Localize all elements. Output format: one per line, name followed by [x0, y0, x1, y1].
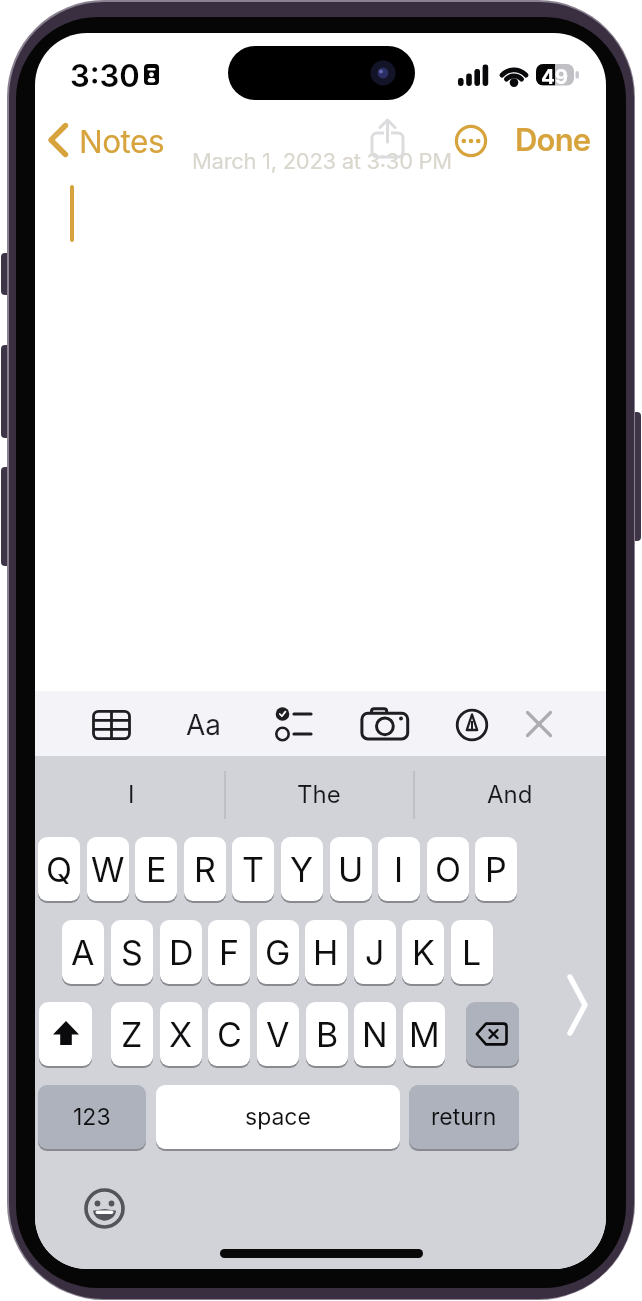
staticText: Y	[290, 849, 314, 890]
staticText: N	[362, 1014, 388, 1055]
button[interactable]: R	[184, 837, 226, 901]
staticText: C	[217, 1014, 242, 1055]
button[interactable]: T	[232, 837, 274, 901]
button[interactable]: O	[427, 837, 469, 901]
staticText: March 1, 2023 at 3:30 PM	[192, 148, 452, 175]
staticText: V	[266, 1014, 290, 1055]
button[interactable]	[565, 970, 595, 1040]
button[interactable]: H	[305, 920, 347, 984]
button[interactable]: E	[135, 837, 177, 901]
staticText: I	[394, 849, 404, 890]
button[interactable]: D	[160, 920, 202, 984]
button[interactable]: N	[354, 1002, 396, 1066]
button[interactable]: And	[413, 756, 606, 833]
staticText: F	[219, 932, 240, 973]
button[interactable]: Notes	[43, 119, 193, 163]
button[interactable]: Done	[505, 119, 601, 161]
staticText: R	[194, 849, 216, 890]
staticText: And	[487, 780, 533, 809]
button[interactable]	[82, 1186, 127, 1231]
button[interactable]	[454, 124, 488, 158]
button[interactable]	[455, 708, 489, 742]
button[interactable]	[39, 1002, 92, 1066]
button[interactable]: K	[402, 920, 444, 984]
button[interactable]: B	[306, 1002, 348, 1066]
button[interactable]: I	[38, 756, 224, 833]
staticText: 123	[73, 1103, 111, 1131]
button[interactable]: space	[156, 1085, 400, 1149]
staticText: Done	[515, 121, 591, 159]
staticText: H	[313, 932, 339, 973]
staticText: T	[242, 849, 264, 890]
staticText: 49	[541, 64, 569, 86]
staticText: D	[169, 932, 194, 973]
button[interactable]: V	[257, 1002, 299, 1066]
staticText: L	[462, 932, 482, 973]
staticText: E	[146, 849, 167, 890]
button[interactable]: L	[451, 920, 493, 984]
staticText: Z	[121, 1014, 143, 1055]
staticText: Notes	[79, 122, 165, 160]
staticText: Q	[46, 849, 72, 890]
button[interactable]	[466, 1002, 519, 1066]
button[interactable]: C	[208, 1002, 250, 1066]
button[interactable]: return	[409, 1085, 519, 1149]
button[interactable]	[89, 703, 134, 747]
staticText: S	[121, 932, 143, 973]
staticText: The	[297, 780, 341, 809]
staticText: J	[365, 932, 385, 973]
staticText: Aa	[186, 708, 222, 742]
button[interactable]: The	[224, 756, 413, 833]
button[interactable]: Z	[111, 1002, 153, 1066]
staticText: W	[91, 849, 125, 890]
staticText: O	[435, 849, 461, 890]
button[interactable]: I	[378, 837, 420, 901]
staticText: G	[265, 932, 291, 973]
staticText: K	[412, 932, 435, 973]
button[interactable]: X	[160, 1002, 202, 1066]
button[interactable]: W	[87, 837, 129, 901]
button[interactable]: 123	[38, 1085, 146, 1149]
staticText: P	[485, 849, 507, 890]
button[interactable]: Q	[38, 837, 80, 901]
staticText: M	[409, 1014, 440, 1055]
button[interactable]	[357, 705, 412, 745]
button[interactable]: J	[354, 920, 396, 984]
staticText: A	[71, 932, 95, 973]
staticText: X	[169, 1014, 193, 1055]
button[interactable]: P	[475, 837, 517, 901]
staticText: U	[338, 849, 364, 890]
button[interactable]: S	[111, 920, 153, 984]
staticText: return	[431, 1103, 497, 1131]
button[interactable]: Aa	[181, 703, 226, 747]
staticText: I	[128, 780, 135, 809]
button[interactable]	[273, 703, 318, 747]
button[interactable]	[523, 708, 555, 740]
staticText: B	[316, 1014, 339, 1055]
button[interactable]: Y	[281, 837, 323, 901]
button[interactable]: A	[62, 920, 104, 984]
button[interactable]: U	[330, 837, 372, 901]
button[interactable]: G	[257, 920, 299, 984]
button[interactable]: M	[403, 1002, 445, 1066]
button[interactable]: F	[208, 920, 250, 984]
staticText: 3:30	[70, 57, 140, 93]
button[interactable]	[367, 117, 409, 159]
staticText: space	[245, 1103, 311, 1131]
